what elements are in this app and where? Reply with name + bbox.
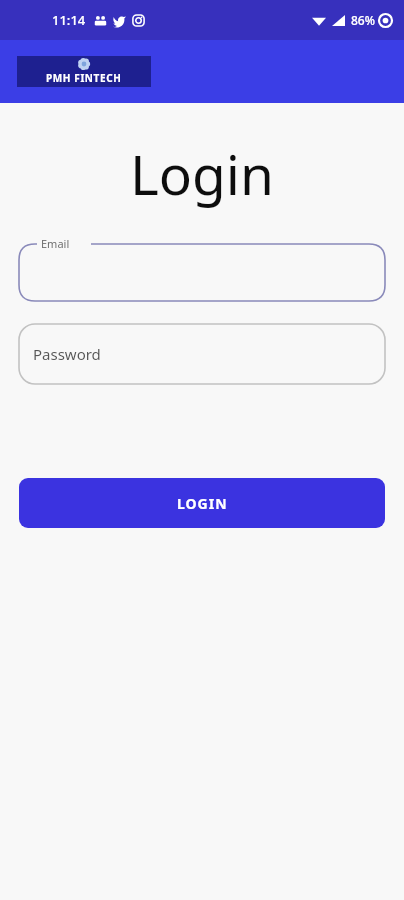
staticText: 86% <box>351 12 375 28</box>
button[interactable]: Password <box>19 324 385 384</box>
button[interactable]: LOGIN <box>19 478 385 528</box>
staticText: 11:14 <box>52 11 86 29</box>
button[interactable]: Email <box>19 237 385 301</box>
staticText: Email <box>41 236 70 251</box>
button[interactable]: PMH Fintech logo <box>17 56 151 87</box>
staticText: PMH FINTECH <box>46 71 122 85</box>
staticText: LOGIN <box>177 494 228 513</box>
staticText: Login <box>0 136 404 211</box>
staticText: Password <box>33 344 101 364</box>
